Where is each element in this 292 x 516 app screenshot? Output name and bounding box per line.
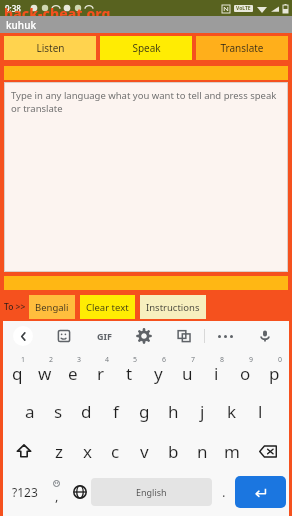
button[interactable]: Change language [68,471,91,513]
button[interactable]: j [188,391,217,431]
staticText: , [55,487,59,505]
staticText: d [81,400,92,423]
staticText: 5 [133,355,138,365]
staticText: w [38,362,52,385]
staticText: English [136,486,167,498]
staticText: . [222,483,226,501]
staticText: 9:38 [5,3,21,14]
button[interactable]: a [16,391,44,431]
button[interactable]: h [159,391,188,431]
button[interactable]: 3 [59,351,87,391]
staticText: hack-cheat.org [4,4,111,16]
staticText: b [168,440,179,463]
staticText: r [97,362,105,385]
staticText: g [139,400,150,423]
button[interactable]: 2 [31,351,59,391]
staticText: 7 [191,355,196,365]
staticText: f [113,400,119,423]
staticText: Speak [132,41,161,55]
button[interactable]: kuhuk [0,16,292,33]
staticText: 4 [105,355,110,365]
staticText: GIF [97,330,112,342]
staticText: y [154,362,163,385]
staticText: o [240,362,251,385]
button[interactable]: c [101,431,130,471]
button[interactable]: f [101,391,130,431]
staticText: e [68,362,78,385]
staticText: 9 [249,355,254,365]
staticText: l [258,400,263,423]
staticText: 1 [21,355,26,365]
button[interactable]: Back [3,321,43,351]
staticText: Type in any language what you want to te… [11,89,281,115]
button[interactable]: Voice input [245,321,285,351]
button[interactable]: 0 [260,351,289,391]
button[interactable]: Backspace [246,431,289,471]
button[interactable]: Translate [196,36,288,60]
staticText: Bengali [35,301,69,314]
staticText: 2 [49,355,54,365]
button[interactable]: v [130,431,159,471]
button[interactable]: l [246,391,275,431]
button[interactable]: Instructions [140,295,206,319]
button[interactable]: s [44,391,72,431]
button[interactable]: b [159,431,188,471]
staticText: a [25,400,35,423]
staticText: c [111,440,120,463]
staticText: To >> [4,301,26,313]
staticText: 6 [162,355,167,365]
button[interactable]: 9 [231,351,260,391]
staticText: z [55,440,63,463]
staticText: t [126,362,133,385]
button[interactable]: Type in any language what you want to te… [4,82,288,272]
staticText: q [12,362,23,385]
button[interactable]: 7 [173,351,202,391]
button[interactable]: z [45,431,73,471]
button[interactable]: Enter [235,476,286,508]
staticText: h [168,400,179,423]
staticText: 0 [278,355,283,365]
staticText: j [200,400,205,423]
staticText: kuhuk [6,18,36,32]
button[interactable]: 8 [202,351,231,391]
staticText: n [197,440,208,463]
button[interactable]: d [72,391,101,431]
button[interactable]: Shift [3,431,45,471]
button[interactable]: Speak [100,36,192,60]
button[interactable]: n [188,431,217,471]
button[interactable]: 5 [115,351,144,391]
button[interactable]: k [217,391,246,431]
staticText: 8 [220,355,225,365]
staticText: u [182,362,193,385]
button[interactable]: 1 [3,351,31,391]
staticText: Listen [36,41,65,55]
staticText: Translate [220,41,264,55]
button[interactable]: More options [205,321,245,351]
button[interactable]: Stickers [43,321,84,351]
staticText: m [224,440,240,463]
staticText: k [227,400,237,423]
button[interactable]: Bengali [29,295,75,319]
button[interactable]: Translate [164,321,204,351]
staticText: p [269,362,280,385]
staticText: i [214,362,219,385]
button[interactable]: x [73,431,101,471]
button[interactable]: Listen [4,36,96,60]
staticText: ?123 [12,484,38,500]
button[interactable]: English [91,478,212,506]
button[interactable]: 4 [87,351,115,391]
button[interactable]: Comma [44,471,68,513]
button[interactable]: GIF [84,321,124,351]
staticText: x [83,440,92,463]
button[interactable]: ?123 [6,471,44,513]
button[interactable]: Settings [124,321,164,351]
staticText: VoLTE [236,5,251,12]
button[interactable]: g [130,391,159,431]
button[interactable]: 6 [144,351,173,391]
staticText: s [54,400,63,423]
staticText: Clear text [86,301,129,314]
staticText: v [140,440,149,463]
button[interactable]: m [217,431,246,471]
button[interactable]: Clear text [80,295,135,319]
button[interactable]: Period [212,471,235,513]
